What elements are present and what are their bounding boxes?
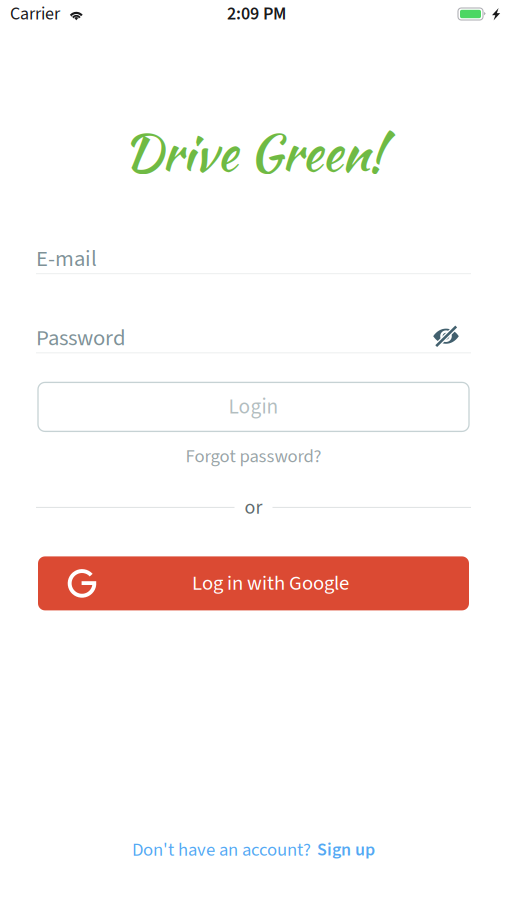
staticText: or	[244, 493, 262, 522]
staticText: Forgot password?	[185, 443, 321, 470]
button[interactable]: Forgot password?	[185, 445, 321, 467]
staticText: Drive Green!	[123, 115, 384, 189]
staticText: Log in with Google	[192, 569, 349, 598]
button[interactable]: Don't have an account?	[132, 838, 375, 862]
staticText: Login	[228, 392, 278, 422]
staticText: Carrier	[10, 1, 60, 27]
button[interactable]: Login	[38, 382, 469, 431]
staticText: Password	[36, 322, 126, 354]
staticText: Don't have an account?	[132, 837, 311, 863]
button[interactable]: Log in with Google	[38, 556, 469, 610]
staticText: 2:09 PM	[227, 1, 286, 27]
button[interactable]: Show password	[432, 326, 471, 351]
staticText: E-mail	[36, 243, 97, 275]
staticText: Sign up	[317, 837, 375, 863]
